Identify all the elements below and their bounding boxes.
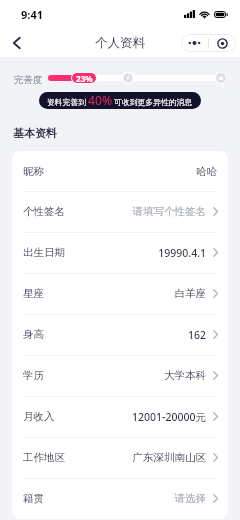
staticText: 9:41 [21, 7, 43, 22]
button[interactable]: 出生日期 [12, 232, 228, 273]
staticText: 19990.4.1 [158, 246, 206, 260]
button[interactable]: 月收入 [12, 396, 228, 437]
button[interactable]: 个性签名 [12, 191, 228, 232]
staticText: 白羊座 [174, 287, 206, 300]
button[interactable]: 昵称 [12, 151, 228, 191]
button[interactable]: Close [209, 34, 236, 52]
staticText: 162 [187, 328, 206, 342]
button[interactable]: 星座 [12, 273, 228, 314]
button[interactable]: 工作地区 [12, 437, 228, 478]
staticText: 学历 [23, 369, 44, 382]
staticText: 昵称 [23, 165, 44, 178]
staticText: 星座 [23, 287, 44, 300]
staticText: 广东深圳南山区 [132, 451, 206, 464]
staticText: 请填写个性签名 [132, 205, 206, 218]
staticText: 基本资料 [13, 126, 57, 140]
staticText: 籍贯 [23, 492, 44, 505]
staticText: 工作地区 [23, 451, 65, 464]
staticText: 12001-20000元 [132, 410, 206, 424]
staticText: 完善度 [14, 74, 43, 86]
button[interactable]: 籍贯 [12, 478, 228, 519]
staticText: 请选择 [174, 492, 206, 505]
button[interactable]: More [181, 34, 208, 52]
staticText: 资料完善到 40% 可收到更多异性的消息 [47, 92, 193, 109]
button[interactable]: 学历 [12, 355, 228, 396]
button[interactable]: Back [6, 32, 27, 53]
staticText: 大学本科 [164, 369, 206, 382]
staticText: 个人资料 [95, 35, 145, 51]
staticText: 个性签名 [23, 205, 65, 218]
button[interactable]: 身高 [12, 314, 228, 355]
staticText: 月收入 [23, 410, 55, 423]
staticText: 哈哈 [196, 165, 217, 178]
staticText: 身高 [23, 328, 44, 341]
button[interactable]: 资料完善到 40% 可收到更多异性的消息 [39, 92, 201, 109]
staticText: 出生日期 [23, 246, 65, 259]
staticText: 23% [76, 73, 93, 83]
